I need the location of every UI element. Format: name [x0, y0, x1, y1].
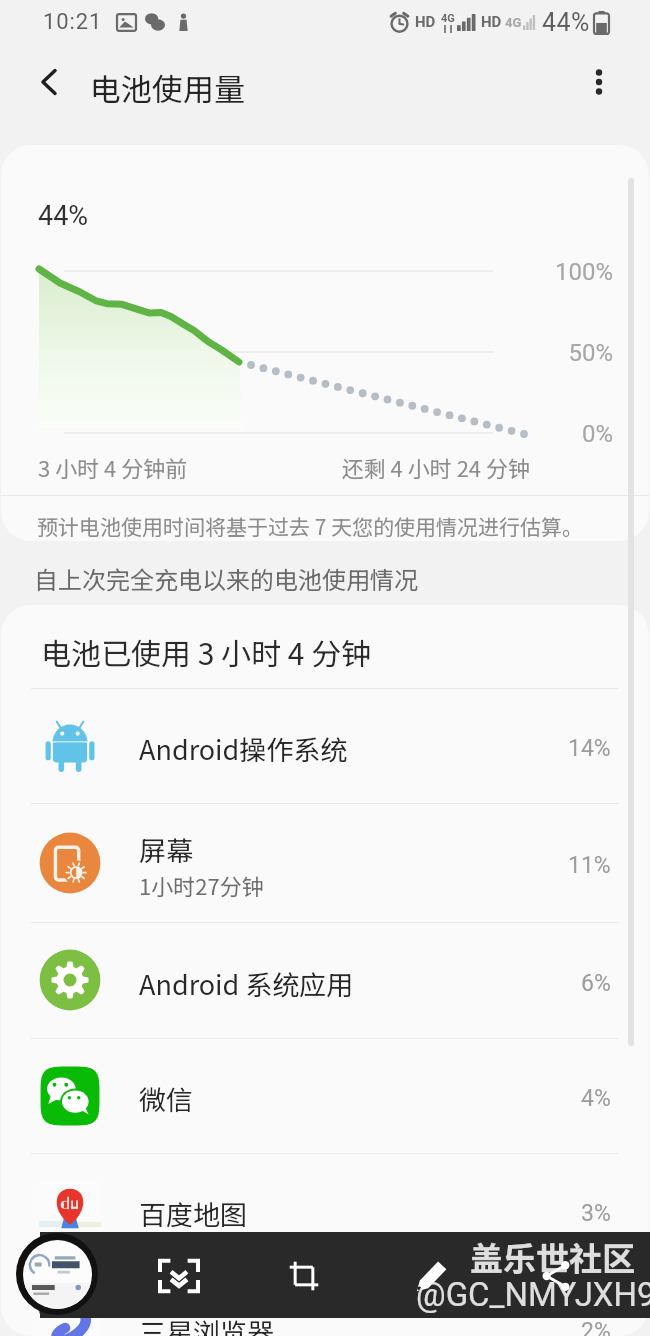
- staticText: 3 小时 4 分钟前: [38, 451, 188, 483]
- button[interactable]: 百度地图: [1, 1153, 649, 1268]
- staticText: 14%: [568, 735, 611, 762]
- staticText: 10:21: [43, 9, 103, 35]
- button[interactable]: More options: [575, 58, 623, 106]
- staticText: HD: [481, 13, 502, 31]
- staticText: 4G: [505, 15, 522, 30]
- staticText: 11%: [568, 852, 611, 879]
- button[interactable]: Back: [25, 58, 73, 106]
- staticText: 44%: [542, 8, 590, 37]
- staticText: 6%: [581, 970, 611, 997]
- staticText: 三星浏览器: [139, 1312, 274, 1336]
- button[interactable]: Android 系统应用: [1, 922, 649, 1038]
- button[interactable]: Screenshot preview: [16, 1233, 98, 1315]
- staticText: 4%: [581, 1085, 611, 1112]
- staticText: 自上次完全充电以来的电池使用情况: [34, 561, 418, 596]
- staticText: 1小时27分钟: [139, 869, 264, 901]
- staticText: 44%: [38, 200, 89, 232]
- staticText: 2%: [581, 1318, 611, 1336]
- button[interactable]: Scroll capture: [147, 1244, 211, 1308]
- staticText: HD: [415, 13, 436, 31]
- button[interactable]: 屏幕: [1, 803, 649, 922]
- button[interactable]: 微信: [1, 1038, 649, 1153]
- staticText: 百度地图: [139, 1194, 247, 1233]
- button[interactable]: 三星浏览器: [1, 1268, 649, 1336]
- staticText: Android操作系统: [139, 729, 348, 768]
- staticText: 电池使用量: [90, 65, 245, 110]
- staticText: 微信: [139, 1079, 193, 1118]
- staticText: 盖乐世社区: [470, 1233, 635, 1281]
- button[interactable]: Crop: [272, 1244, 336, 1308]
- staticText: 屏幕: [139, 830, 193, 869]
- staticText: 3%: [581, 1200, 611, 1227]
- staticText: 0%: [581, 420, 613, 448]
- staticText: 预计电池使用时间将基于过去 7 天您的使用情况进行估算。: [37, 511, 584, 541]
- staticText: 电池已使用 3 小时 4 分钟: [41, 630, 372, 673]
- staticText: 4G: [441, 12, 455, 25]
- button[interactable]: Android操作系统: [1, 688, 649, 803]
- button[interactable]: Draw: [400, 1244, 464, 1308]
- button[interactable]: Share: [524, 1244, 588, 1308]
- staticText: 50%: [568, 339, 613, 367]
- staticText: 100%: [554, 258, 613, 286]
- staticText: Android 系统应用: [139, 964, 354, 1003]
- staticText: @GC_NMYJXH9: [416, 1275, 650, 1314]
- staticText: 还剩 4 小时 24 分钟: [261, 451, 530, 483]
